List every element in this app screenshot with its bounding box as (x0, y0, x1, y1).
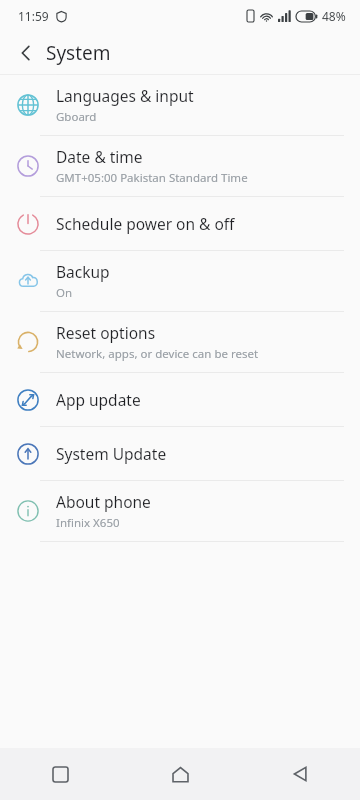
button[interactable]: Schedule power on & off (0, 197, 360, 250)
button[interactable]: App update (0, 373, 360, 426)
button[interactable]: Back (240, 748, 360, 800)
staticText: Gboard (56, 109, 97, 125)
button[interactable]: Backup (0, 251, 360, 311)
staticText: About phone (56, 491, 151, 512)
button[interactable]: Date & time (0, 136, 360, 196)
button[interactable]: Recent apps (0, 748, 120, 800)
staticText: System Update (56, 443, 167, 464)
staticText: System (46, 40, 111, 66)
button[interactable]: System Update (0, 427, 360, 480)
button[interactable]: Back (6, 33, 46, 73)
staticText: GMT+05:00 Pakistan Standard Time (56, 170, 248, 186)
staticText: Schedule power on & off (56, 213, 235, 234)
staticText: On (56, 285, 73, 301)
button[interactable]: Home (120, 748, 240, 800)
staticText: Date & time (56, 146, 143, 167)
staticText: Network, apps, or device can be reset (56, 346, 259, 362)
staticText: 48% (322, 8, 346, 24)
staticText: Reset options (56, 322, 156, 343)
staticText: Infinix X650 (56, 515, 120, 531)
staticText: App update (56, 389, 141, 410)
button[interactable]: Reset options (0, 312, 360, 372)
staticText: Languages & input (56, 85, 194, 106)
button[interactable]: Languages & input (0, 75, 360, 135)
button[interactable]: About phone (0, 481, 360, 541)
staticText: 11:59 (18, 8, 49, 24)
staticText: Backup (56, 261, 110, 282)
